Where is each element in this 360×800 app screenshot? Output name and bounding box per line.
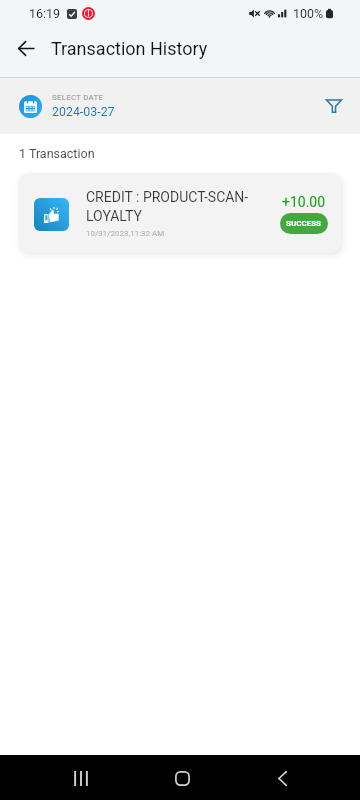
button[interactable]: Filter — [318, 90, 350, 122]
button[interactable]: SELECT DATE — [19, 93, 115, 119]
staticText: 10/31/2023,11:32 AM — [86, 229, 165, 238]
staticText: SELECT DATE — [52, 93, 104, 102]
button[interactable]: Back — [10, 32, 42, 64]
button[interactable]: Back — [262, 758, 302, 798]
staticText: 1 Transaction — [19, 146, 95, 161]
staticText: SUCCESS — [286, 219, 322, 228]
staticText: 100% — [293, 6, 324, 21]
button[interactable]: Recent apps — [61, 758, 101, 798]
staticText: CREDIT : PRODUCT-SCAN-LOYALTY — [86, 189, 274, 224]
staticText: +10.00 — [282, 194, 326, 210]
staticText: 16:19 — [29, 6, 61, 21]
button[interactable]: Home — [162, 758, 202, 798]
staticText: 2024-03-27 — [52, 104, 115, 119]
button[interactable]: CREDIT : PRODUCT-SCAN-LOYALTY — [19, 173, 341, 253]
staticText: Transaction History — [51, 38, 208, 59]
